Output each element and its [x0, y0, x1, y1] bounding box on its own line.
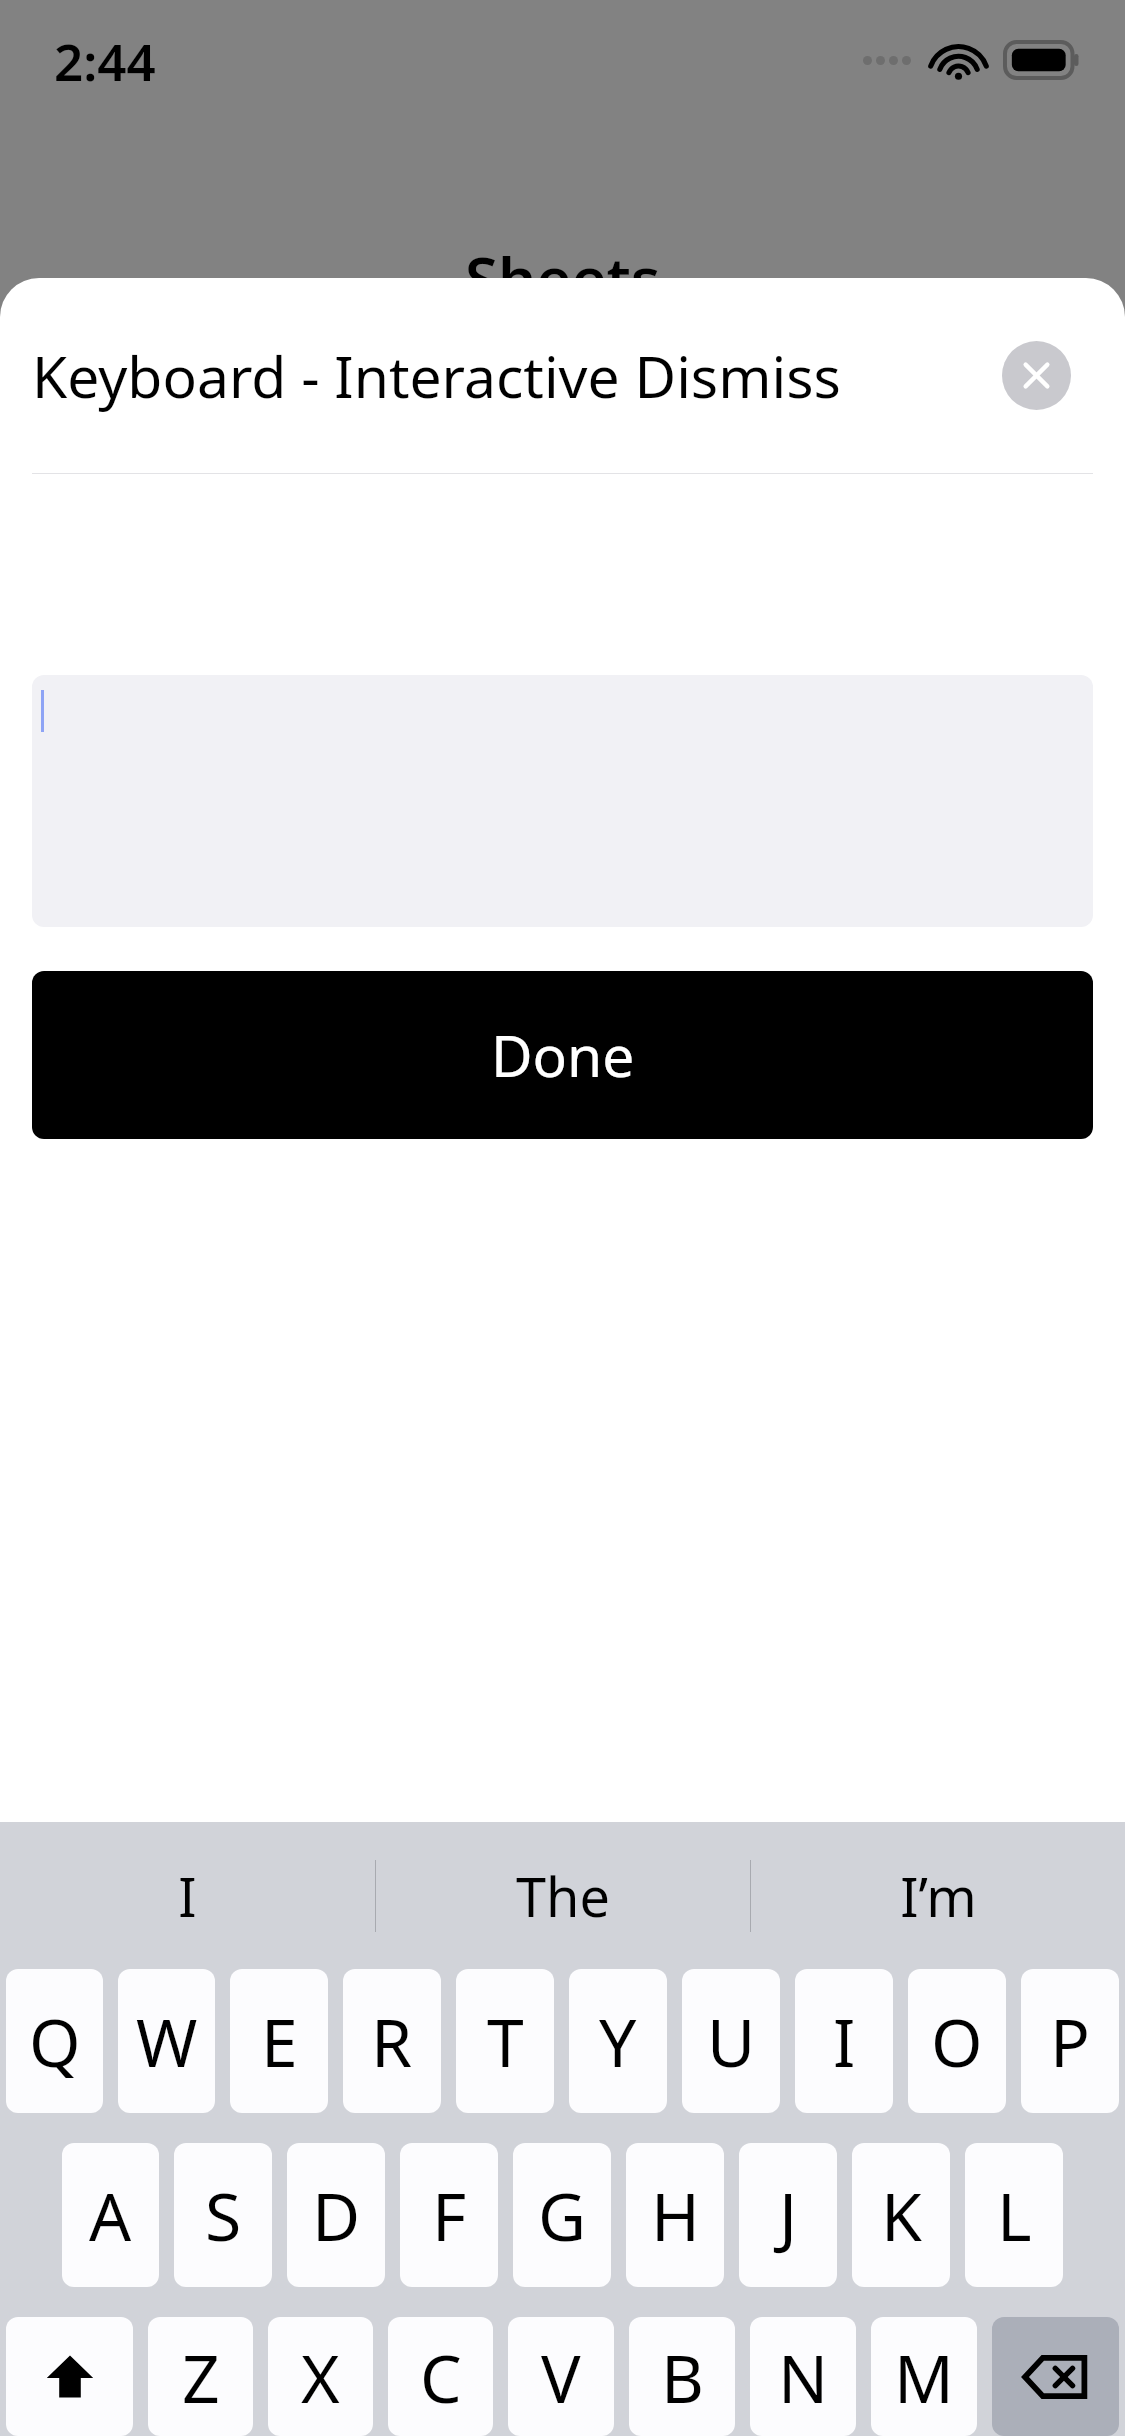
staticText: Keyboard - Interactive Dismiss [32, 337, 841, 415]
staticText: Sheets [465, 237, 661, 319]
staticText: V [541, 2332, 581, 2422]
button[interactable]: U [682, 1969, 780, 2113]
staticText: 2:44 [54, 26, 156, 95]
staticText: K [881, 2170, 922, 2260]
button[interactable]: S [174, 2143, 272, 2287]
staticText: J [779, 2170, 798, 2260]
staticText: I [833, 1996, 856, 2086]
button[interactable]: K [852, 2143, 950, 2287]
button[interactable]: Q [6, 1969, 103, 2113]
staticText: I [178, 1859, 197, 1933]
button[interactable]: Z [148, 2317, 253, 2436]
button[interactable]: C [388, 2317, 493, 2436]
staticText: N [778, 2332, 829, 2422]
button[interactable]: Shift [6, 2317, 133, 2436]
staticText: T [487, 1996, 524, 2086]
staticText: R [371, 1996, 413, 2086]
staticText: Done [491, 1016, 635, 1094]
button[interactable]: D [287, 2143, 385, 2287]
button[interactable]: Y [569, 1969, 667, 2113]
staticText: X [301, 2332, 340, 2422]
button[interactable]: R [343, 1969, 441, 2113]
button[interactable]: F [400, 2143, 498, 2287]
staticText: Q [29, 1996, 81, 2086]
button[interactable]: H [626, 2143, 724, 2287]
staticText: A [89, 2170, 132, 2260]
staticText: Y [599, 1996, 637, 2086]
button[interactable]: G [513, 2143, 611, 2287]
button[interactable]: X [268, 2317, 373, 2436]
staticText: Z [182, 2332, 220, 2422]
staticText: D [312, 2170, 361, 2260]
button[interactable]: M [871, 2317, 977, 2436]
staticText: M [894, 2332, 954, 2422]
staticText: O [931, 1996, 983, 2086]
button[interactable]: V [508, 2317, 614, 2436]
button[interactable]: I’m [751, 1822, 1125, 1969]
button[interactable]: J [739, 2143, 837, 2287]
staticText: H [651, 2170, 700, 2260]
staticText: I’m [900, 1859, 977, 1933]
staticText: W [136, 1996, 198, 2086]
staticText: L [997, 2170, 1032, 2260]
button[interactable]: L [965, 2143, 1063, 2287]
button[interactable]: T [456, 1969, 554, 2113]
button[interactable]: W [118, 1969, 215, 2113]
button[interactable]: P [1021, 1969, 1119, 2113]
button[interactable]: I [795, 1969, 893, 2113]
button[interactable]: Delete [992, 2317, 1119, 2436]
staticText: The [516, 1859, 610, 1933]
button[interactable]: I [0, 1822, 375, 1969]
staticText: U [707, 1996, 756, 2086]
staticText: S [205, 2170, 242, 2260]
staticText: F [432, 2170, 467, 2260]
button[interactable]: E [230, 1969, 328, 2113]
button[interactable]: The [376, 1822, 750, 1969]
staticText: E [261, 1996, 298, 2086]
button[interactable]: B [629, 2317, 735, 2436]
button[interactable]: N [750, 2317, 856, 2436]
button[interactable]: Done [32, 971, 1093, 1139]
staticText: B [661, 2332, 704, 2422]
button[interactable]: A [62, 2143, 159, 2287]
button[interactable]: Close [1002, 341, 1071, 410]
button[interactable]: O [908, 1969, 1006, 2113]
staticText: G [538, 2170, 587, 2260]
staticText: C [420, 2332, 462, 2422]
staticText: P [1050, 1996, 1090, 2086]
